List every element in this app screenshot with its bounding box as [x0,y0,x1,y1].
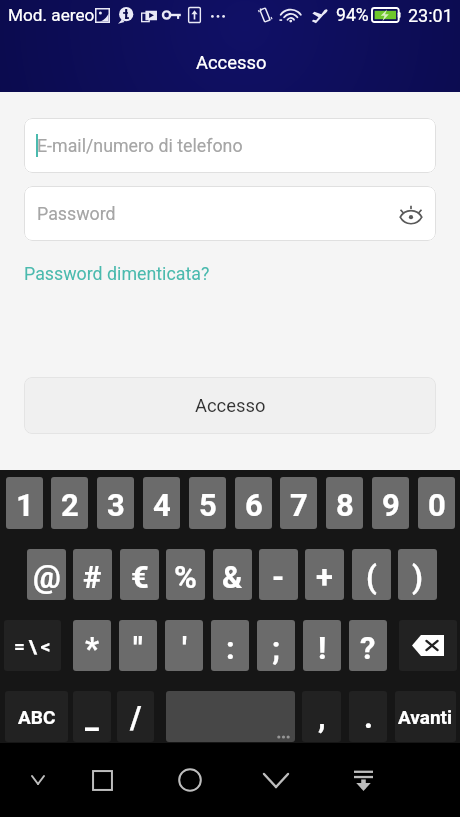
button[interactable]: 4 [143,477,180,529]
button[interactable]: € [120,549,159,600]
staticText: 5 [199,487,217,523]
button[interactable]: Backspace [399,620,457,671]
staticText: 7 [290,487,308,523]
staticText: 4 [153,487,171,523]
staticText: + [316,559,333,595]
staticText: Password dimenticata? [24,263,210,284]
button[interactable]: , [302,691,341,742]
button[interactable]: Scorri giù [333,743,393,817]
staticText: ? [360,630,376,666]
button[interactable]: = \ < [4,620,61,671]
staticText: 94% [336,5,369,26]
button[interactable]: Home [160,743,220,817]
staticText: & [222,559,243,595]
staticText: , [318,699,326,735]
staticText: ABC [18,706,56,728]
button[interactable]: & [213,549,252,600]
button[interactable]: * [73,620,111,671]
staticText: Accesso [196,52,267,74]
staticText: - [272,559,285,595]
staticText: * [85,630,100,666]
staticText: Mod. aereo [8,5,95,25]
button[interactable]: # [73,549,112,600]
staticText: ) [412,559,423,595]
button[interactable]: Spazio [166,691,295,742]
button[interactable]: Accesso [24,377,436,434]
staticText: = \ < [14,635,51,657]
button[interactable]: ( [352,549,391,600]
button[interactable]: ! [303,620,341,671]
button[interactable]: Password [24,186,436,241]
button[interactable]: Password dimenticata? [24,263,210,284]
staticText: 2 [61,487,79,523]
staticText: Avanti [398,706,453,728]
staticText: ( [366,559,377,595]
button[interactable]: + [305,549,344,600]
button[interactable]: Mostra password [391,194,431,234]
button[interactable]: 9 [372,477,409,529]
staticText: ' [182,630,187,666]
button[interactable]: % [166,549,205,600]
staticText: Password [37,203,116,224]
button[interactable]: 2 [51,477,88,529]
button[interactable]: ' [165,620,203,671]
button[interactable]: : [211,620,249,671]
staticText: ; [272,630,281,666]
button[interactable]: / [117,691,154,742]
staticText: / [130,699,142,735]
staticText: 8 [336,487,354,523]
button[interactable]: . [349,691,387,742]
staticText: _ [85,699,99,735]
button[interactable]: @ [27,549,66,600]
button[interactable]: _ [73,691,111,742]
staticText: ! [318,630,327,666]
staticText: 23:01 [408,5,453,26]
staticText: E-mail/numero di telefono [37,135,243,156]
staticText: € [131,559,149,595]
button[interactable]: Nascondi tastiera [8,743,68,817]
button[interactable]: ? [349,620,387,671]
staticText: 3 [107,487,125,523]
staticText: . [364,699,373,735]
button[interactable]: Avanti [395,691,456,742]
staticText: : [226,630,235,666]
other: Backspace [399,620,457,671]
button[interactable]: - [259,549,298,600]
staticText: @ [33,559,61,595]
button[interactable]: Indietro [246,743,306,817]
button[interactable]: 8 [326,477,363,529]
staticText: # [83,559,102,595]
button[interactable]: 3 [97,477,134,529]
staticText: 0 [428,487,446,523]
other: Spazio [166,691,295,742]
button[interactable]: " [119,620,157,671]
button[interactable]: ABC [5,691,68,742]
staticText: " [133,630,143,666]
button[interactable]: 1 [6,477,43,529]
staticText: 6 [245,487,263,523]
button[interactable]: 7 [280,477,317,529]
button[interactable]: 5 [189,477,226,529]
button[interactable]: ) [398,549,437,600]
button[interactable]: E-mail/numero di telefono [24,118,436,173]
button[interactable]: App recenti [72,743,132,817]
button[interactable]: ; [257,620,295,671]
staticText: Accesso [195,395,266,417]
staticText: 1 [16,487,34,523]
button[interactable]: 6 [235,477,272,529]
button[interactable]: 0 [418,477,455,529]
staticText: % [174,559,197,595]
staticText: 9 [382,487,400,523]
